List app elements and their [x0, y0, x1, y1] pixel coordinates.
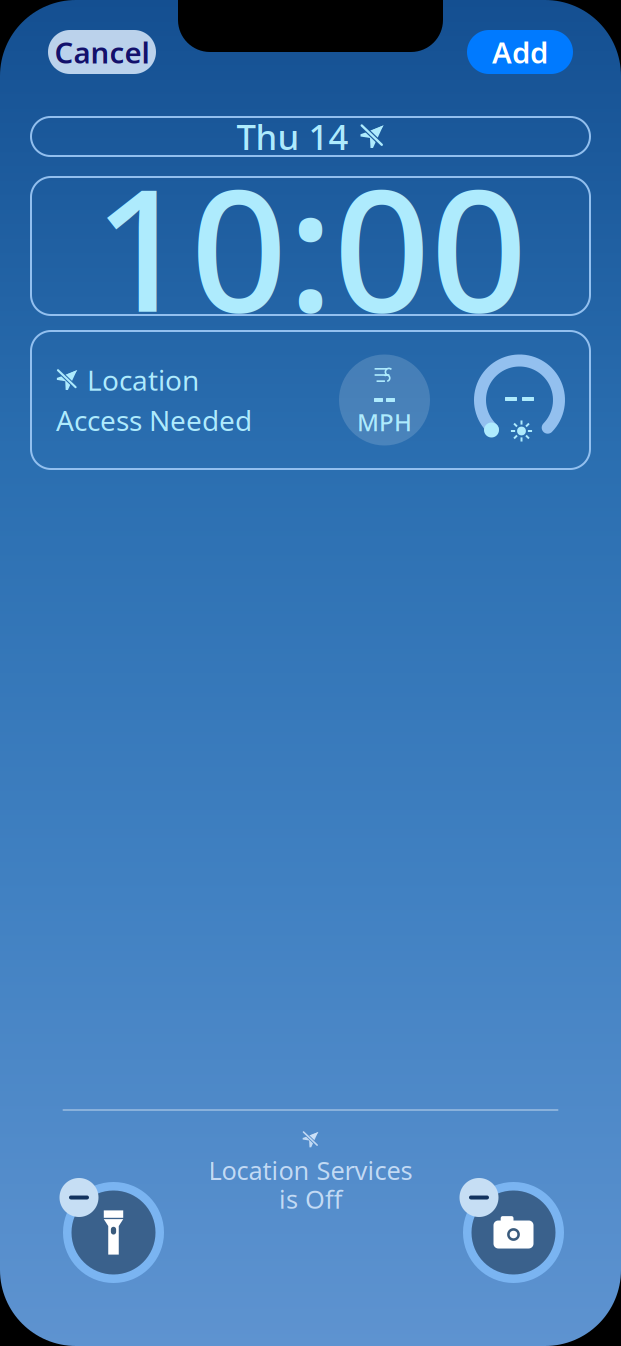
staticText: Location: [87, 361, 199, 398]
button[interactable]: Remove Flashlight control: [57, 1176, 164, 1283]
staticText: Cancel: [54, 32, 149, 71]
staticText: Thu 14: [236, 113, 348, 159]
button[interactable]: Add: [467, 30, 573, 74]
button[interactable]: 10:00: [31, 177, 590, 315]
button[interactable]: Thu 14: [31, 117, 590, 156]
button[interactable]: Cancel: [48, 30, 156, 74]
staticText: Add: [492, 32, 548, 71]
button[interactable]: Location: [31, 331, 590, 469]
staticText: MPH: [357, 406, 412, 438]
staticText: Location Services: [208, 1153, 412, 1187]
staticText: is Off: [279, 1182, 342, 1216]
button[interactable]: Remove Camera control: [457, 1176, 564, 1283]
staticText: Access Needed: [56, 401, 252, 439]
staticText: 10:00: [93, 134, 527, 358]
